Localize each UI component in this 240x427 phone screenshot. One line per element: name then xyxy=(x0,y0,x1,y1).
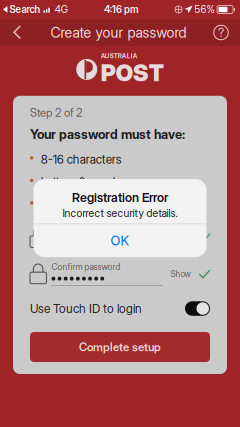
staticText: POST xyxy=(101,59,164,87)
button[interactable]: Back xyxy=(0,20,33,45)
button[interactable]: Show xyxy=(166,264,194,284)
staticText: Use Touch ID to login xyxy=(30,301,142,316)
staticText: Step 2 of 2 xyxy=(30,106,82,119)
staticText: ? xyxy=(218,25,224,40)
staticText: Letters & numbers xyxy=(41,174,136,189)
staticText: AUSTRALIA xyxy=(101,52,138,60)
button[interactable]: Help xyxy=(204,20,240,44)
button[interactable]: OK xyxy=(33,224,206,257)
button[interactable]: Use Touch ID to login xyxy=(185,301,210,316)
staticText: Create your password xyxy=(50,24,186,41)
staticText: 4G xyxy=(55,3,68,15)
staticText: Your password must have: xyxy=(30,126,185,142)
button[interactable]: Complete setup xyxy=(30,332,210,362)
staticText: OK xyxy=(110,233,129,249)
staticText: Search xyxy=(9,3,40,15)
staticText: 4:16 pm xyxy=(104,3,139,15)
staticText: Confirm password xyxy=(51,262,120,272)
staticText: Show xyxy=(170,269,190,279)
staticText: 8-16 characters xyxy=(41,152,122,166)
staticText: Incorrect security details. xyxy=(62,207,177,219)
staticText: Registration Error xyxy=(72,190,168,205)
staticText: Complete setup xyxy=(79,340,161,354)
staticText: No spaces xyxy=(41,197,97,212)
staticText: 56% xyxy=(195,3,215,15)
